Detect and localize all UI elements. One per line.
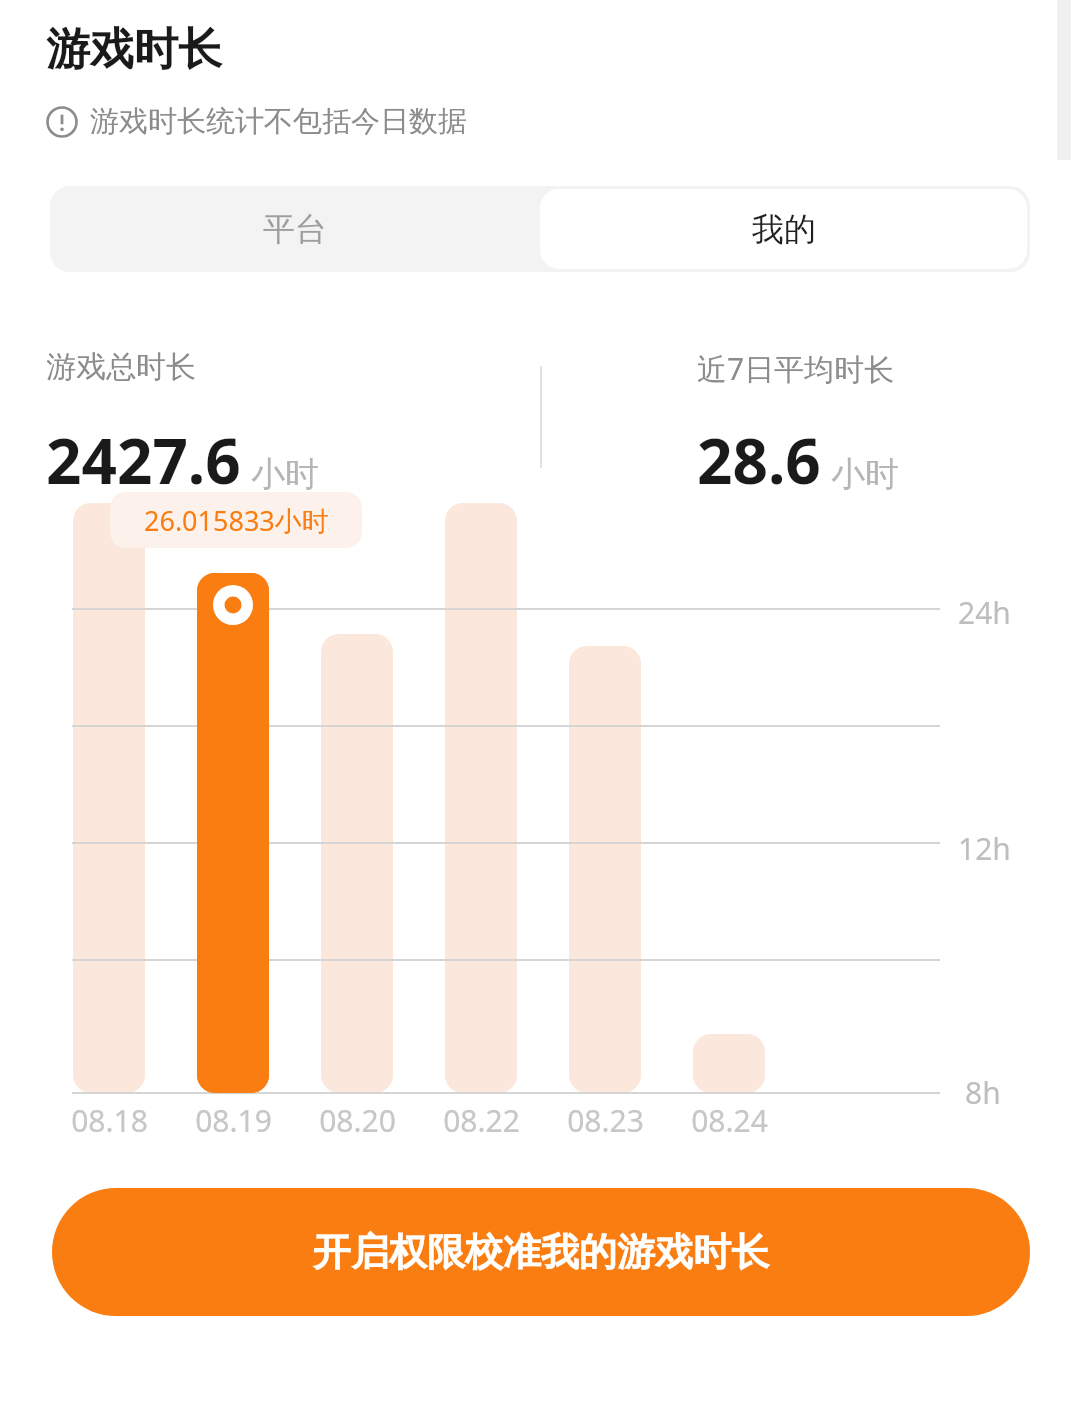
staticText: 08.20: [319, 1100, 396, 1141]
staticText: 小时: [831, 453, 899, 496]
staticText: 08.19: [195, 1100, 272, 1141]
staticText: 08.22: [443, 1100, 520, 1141]
button[interactable]: 开启权限校准我的游戏时长: [52, 1188, 1030, 1316]
button[interactable]: 我的: [540, 189, 1027, 269]
staticText: 2427.6: [46, 418, 241, 502]
staticText: 08.23: [567, 1100, 644, 1141]
staticText: 游戏总时长: [46, 348, 196, 386]
staticText: 游戏时长: [46, 22, 222, 77]
staticText: 开启权限校准我的游戏时长: [313, 1228, 769, 1276]
staticText: 08.24: [691, 1100, 768, 1141]
staticText: 我的: [752, 209, 816, 249]
staticText: 近7日平均时长: [697, 348, 895, 389]
staticText: 08.18: [71, 1100, 148, 1141]
button[interactable]: 平台: [50, 186, 540, 272]
staticText: 平台: [263, 209, 327, 249]
staticText: 26.015833小时: [144, 502, 329, 539]
staticText: 8h: [965, 1072, 1001, 1113]
staticText: 28.6: [697, 418, 821, 502]
staticText: 12h: [958, 828, 1011, 869]
staticText: 小时: [251, 453, 319, 496]
button[interactable]: [540, 186, 1030, 272]
staticText: 游戏时长统计不包括今日数据: [90, 103, 467, 140]
staticText: 24h: [958, 592, 1011, 633]
